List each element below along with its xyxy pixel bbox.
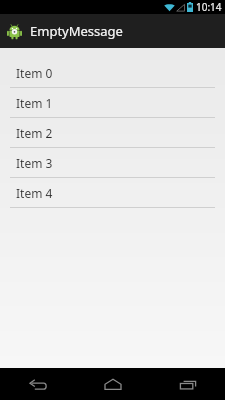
staticText: Item 0 [16, 65, 53, 81]
button[interactable]: Item 4 [0, 178, 225, 207]
staticText: 10:14 [196, 0, 222, 14]
button[interactable]: Back [0, 368, 75, 400]
staticText: Item 4 [16, 185, 53, 201]
button[interactable]: Item 0 [0, 58, 225, 87]
button[interactable]: Item 3 [0, 148, 225, 177]
staticText: EmptyMessage [30, 22, 123, 40]
staticText: Item 3 [16, 155, 53, 171]
button[interactable]: Item 1 [0, 88, 225, 117]
staticText: Item 1 [16, 95, 53, 111]
button[interactable]: Recent apps [150, 368, 225, 400]
button[interactable]: Home [75, 368, 150, 400]
button[interactable]: Item 2 [0, 118, 225, 147]
staticText: Item 2 [16, 125, 53, 141]
